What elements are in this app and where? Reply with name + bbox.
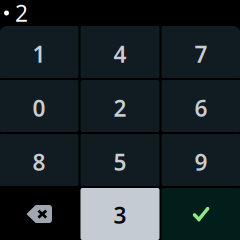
button[interactable]: 4 [80,26,159,78]
staticText: 2 [113,93,126,123]
staticText: 5 [113,147,126,177]
staticText: 7 [194,39,207,69]
staticText: 3 [113,200,126,230]
staticText: 9 [194,147,207,177]
staticText: 8 [32,147,45,177]
staticText: 2 [15,0,28,28]
button[interactable]: 9 [161,134,240,186]
staticText: 1 [32,39,45,69]
button[interactable]: 2 [80,80,159,132]
button[interactable]: 3 [80,188,159,240]
button[interactable]: 0 [0,80,78,132]
button[interactable]: 7 [161,26,240,78]
button[interactable]: 5 [80,134,159,186]
staticText: 0 [32,93,45,123]
button[interactable]: 1 [0,26,78,78]
button[interactable]: 6 [161,80,240,132]
staticText: 6 [194,93,207,123]
staticText: 4 [113,39,126,69]
button[interactable]: Confirm [161,188,240,240]
button[interactable]: 8 [0,134,78,186]
button[interactable]: Delete [0,188,78,240]
